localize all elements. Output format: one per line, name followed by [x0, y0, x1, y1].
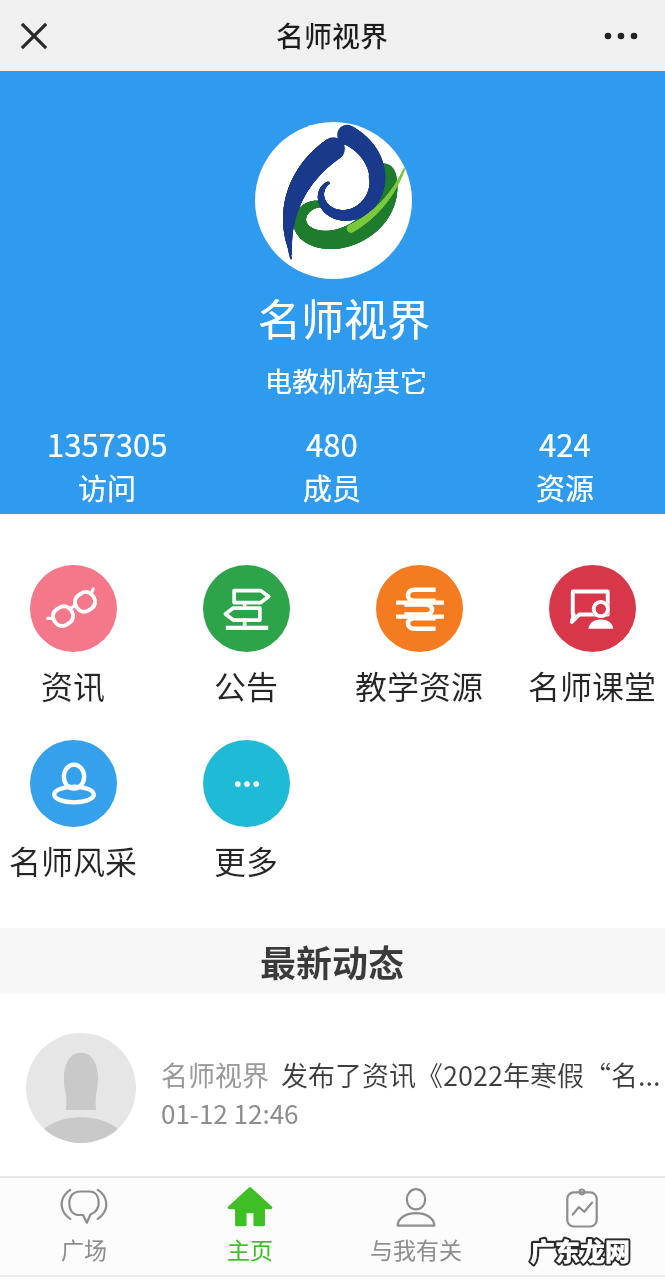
- button[interactable]: 更多: [163, 736, 329, 884]
- button[interactable]: 资讯: [0, 561, 156, 709]
- staticText: 424: [539, 421, 591, 466]
- staticText: 名师视界: [276, 15, 389, 56]
- button[interactable]: 主页: [167, 1178, 333, 1275]
- button[interactable]: 1357305: [7, 421, 207, 508]
- staticText: 名师视界 发布了资讯《2022年寒假“名...: [161, 1055, 661, 1094]
- staticText: 资讯: [41, 662, 106, 708]
- button[interactable]: 公告: [163, 561, 329, 709]
- staticText: 广东龙网: [530, 1232, 631, 1268]
- staticText: 广场: [61, 1232, 107, 1265]
- button[interactable]: 名师课堂: [509, 561, 665, 709]
- button[interactable]: 教学资源: [336, 561, 502, 709]
- staticText: 名师课堂: [528, 662, 657, 708]
- button[interactable]: 名师风采: [0, 736, 156, 884]
- button[interactable]: 名师视界 logo: [255, 122, 412, 279]
- button[interactable]: Reports: [499, 1178, 665, 1275]
- staticText: 访问: [78, 466, 137, 508]
- button[interactable]: Close: [6, 8, 62, 64]
- staticText: 01-12 12:46: [161, 1094, 299, 1132]
- button[interactable]: 424: [465, 421, 665, 508]
- staticText: 与我有关: [370, 1232, 462, 1265]
- staticText: 教学资源: [355, 662, 484, 708]
- button[interactable]: 广场: [0, 1178, 167, 1275]
- staticText: 资源: [536, 466, 595, 508]
- staticText: 最新动态: [260, 935, 405, 987]
- staticText: 480: [306, 421, 358, 466]
- staticText: 名师视界: [258, 286, 430, 348]
- button[interactable]: 名师视界 发布了资讯《2022年寒假“名...: [0, 994, 665, 1176]
- staticText: 主页: [227, 1232, 273, 1265]
- button[interactable]: More options: [593, 8, 649, 64]
- staticText: 更多: [214, 837, 279, 883]
- button[interactable]: 与我有关: [333, 1178, 499, 1275]
- staticText: 成员: [303, 466, 362, 508]
- button[interactable]: 480: [232, 421, 432, 508]
- staticText: 广东龙网: [530, 1232, 631, 1268]
- staticText: 1357305: [47, 421, 168, 466]
- staticText: 电教机构其它: [265, 361, 427, 400]
- staticText: 名师风采: [9, 837, 138, 883]
- staticText: 公告: [214, 662, 279, 708]
